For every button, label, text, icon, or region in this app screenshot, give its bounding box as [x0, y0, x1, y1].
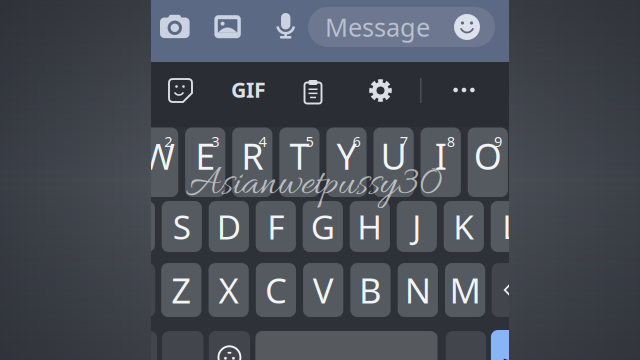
button[interactable]: G: [303, 201, 343, 252]
button[interactable]: Settings: [369, 79, 392, 102]
button[interactable]: U: [373, 127, 414, 197]
button[interactable]: O: [468, 127, 508, 197]
staticText: L: [502, 204, 519, 249]
button[interactable]: Stickers: [169, 79, 192, 102]
staticText: Y: [336, 132, 356, 180]
button[interactable]: W: [138, 127, 178, 197]
staticText: C: [265, 267, 287, 313]
button[interactable]: Camera: [160, 13, 190, 38]
button[interactable]: Z: [161, 263, 201, 317]
button[interactable]: M: [445, 263, 485, 317]
button[interactable]: Space: [255, 331, 437, 360]
staticText: B: [359, 267, 382, 313]
staticText: 3: [211, 131, 219, 151]
staticText: K: [453, 204, 474, 249]
staticText: N: [405, 267, 431, 313]
button[interactable]: Backspace: [492, 263, 540, 317]
staticText: H: [357, 204, 382, 249]
button[interactable]: Emoji: [209, 331, 250, 360]
button[interactable]: R: [232, 127, 272, 197]
button[interactable]: S: [162, 201, 202, 252]
staticText: Asianwetpussy30: [186, 159, 442, 211]
button[interactable]: Voice input: [276, 13, 296, 39]
button[interactable]: Message: [308, 7, 495, 47]
button[interactable]: X: [208, 263, 249, 317]
staticText: E: [195, 132, 215, 180]
staticText: Z: [171, 267, 191, 313]
button[interactable]: Photos: [214, 15, 241, 38]
staticText: D: [217, 204, 241, 249]
button[interactable]: A: [115, 201, 155, 252]
staticText: V: [313, 267, 334, 313]
button[interactable]: More options: [453, 87, 475, 93]
staticText: 8: [447, 131, 455, 151]
button[interactable]: K: [444, 201, 484, 252]
button[interactable]: F: [256, 201, 296, 252]
staticText: O: [474, 132, 502, 180]
button[interactable]: C: [256, 263, 296, 317]
button[interactable]: J: [397, 201, 437, 252]
button[interactable]: D: [209, 201, 249, 252]
button[interactable]: Numbers: [117, 331, 157, 360]
button[interactable]: T: [279, 127, 319, 197]
staticText: U: [381, 132, 407, 180]
button[interactable]: GIF: [231, 79, 271, 100]
button[interactable]: V: [303, 263, 343, 317]
button[interactable]: Clipboard: [303, 78, 323, 102]
staticText: 5: [305, 131, 313, 151]
staticText: R: [241, 132, 263, 180]
button[interactable]: Y: [326, 127, 367, 197]
button[interactable]: B: [350, 263, 391, 317]
staticText: Message: [325, 10, 430, 44]
staticText: GIF: [231, 75, 266, 104]
staticText: I: [435, 132, 447, 180]
button[interactable]: H: [350, 201, 390, 252]
staticText: F: [267, 204, 284, 249]
button[interactable]: N: [398, 263, 438, 317]
staticText: 2: [164, 131, 172, 151]
staticText: J: [412, 204, 421, 249]
staticText: X: [219, 267, 239, 313]
staticText: M: [450, 267, 481, 313]
staticText: 7: [400, 131, 408, 151]
button[interactable]: Send: [491, 330, 532, 360]
staticText: T: [289, 132, 309, 180]
staticText: G: [311, 204, 335, 249]
staticText: S: [173, 204, 191, 249]
staticText: 9: [494, 131, 502, 151]
button[interactable]: E: [185, 127, 225, 197]
staticText: W: [142, 132, 175, 180]
staticText: 6: [353, 131, 361, 151]
button[interactable]: L: [491, 201, 531, 252]
button[interactable]: I: [421, 127, 461, 197]
staticText: 4: [258, 131, 266, 151]
